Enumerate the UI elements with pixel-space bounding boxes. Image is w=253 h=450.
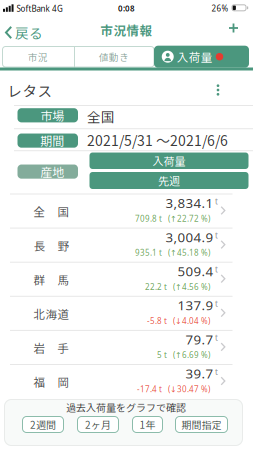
staticText: 戻る — [15, 23, 43, 42]
staticText: SoftBank — [16, 3, 49, 14]
button[interactable]: 先週 — [89, 172, 248, 189]
staticText: 全 国 — [33, 203, 69, 220]
button[interactable]: 群 馬 — [0, 262, 253, 296]
button[interactable]: 北海道 — [0, 296, 253, 330]
staticText: 1年 — [139, 417, 155, 432]
button[interactable]: 2週間 — [22, 416, 64, 433]
staticText: 137.9 — [177, 296, 213, 314]
staticText: 市況 — [28, 50, 48, 64]
button[interactable]: 長 野 — [0, 228, 253, 262]
staticText: t — [215, 264, 218, 275]
staticText: 先週 — [158, 172, 180, 188]
staticText: 5 t (↑6.69 %) — [157, 350, 210, 360]
button[interactable]: メニュー — [210, 81, 226, 99]
button[interactable]: 岩 手 — [0, 330, 253, 364]
button[interactable]: 市況 — [2, 46, 74, 67]
staticText: t — [215, 298, 218, 309]
staticText: 2ヶ月 — [85, 417, 111, 432]
staticText: 2021/5/31 ～2021/6/6 — [87, 130, 228, 150]
staticText: 935.1 t (↑45.18 %) — [135, 247, 210, 258]
staticText: 福 岡 — [33, 373, 69, 390]
staticText: 長 野 — [33, 237, 69, 254]
button[interactable]: 値動き — [74, 46, 154, 67]
staticText: 期間指定 — [181, 417, 221, 432]
staticText: 市場 — [40, 107, 64, 124]
staticText: 39.7 — [185, 364, 213, 382]
button[interactable]: 戻る — [5, 23, 43, 41]
staticText: t — [215, 332, 218, 343]
button[interactable]: 2ヶ月 — [77, 416, 119, 433]
staticText: 22.2 t (↑4.56 %) — [145, 281, 210, 292]
staticText: 0:08 — [118, 3, 135, 14]
staticText: 過去入荷量をグラフで確認 — [66, 400, 186, 414]
button[interactable]: 入荷量 — [89, 152, 248, 169]
staticText: 79.7 — [185, 330, 213, 348]
button[interactable]: 追加 — [225, 19, 242, 36]
staticText: t — [215, 230, 218, 241]
staticText: 入荷量 — [152, 153, 185, 169]
staticText: 3,004.9 — [165, 228, 213, 246]
button[interactable]: 期間指定 — [175, 416, 228, 433]
staticText: t — [215, 196, 218, 207]
staticText: レタス — [7, 80, 52, 101]
button[interactable]: 入荷量 — [154, 46, 249, 68]
staticText: 期間 — [40, 132, 64, 149]
staticText: -17.4 t (↓30.47 %) — [137, 384, 210, 394]
staticText: 市況情報 — [100, 21, 152, 39]
button[interactable]: 福 岡 — [0, 364, 253, 398]
button[interactable]: 全 国 — [0, 193, 253, 228]
staticText: 値動き — [99, 50, 129, 64]
staticText: 709.8 t (↑22.72 %) — [135, 213, 210, 224]
staticText: 26% — [211, 3, 228, 14]
staticText: t — [215, 366, 218, 377]
staticText: 全国 — [87, 106, 115, 126]
staticText: 4G — [52, 3, 63, 14]
staticText: 北海道 — [33, 305, 69, 322]
staticText: 入荷量 — [177, 48, 213, 65]
button[interactable]: 1年 — [132, 416, 163, 433]
staticText: 産地 — [40, 163, 64, 180]
staticText: 509.4 — [177, 262, 213, 280]
staticText: 3,834.1 — [165, 194, 213, 212]
staticText: 群 馬 — [33, 271, 69, 288]
staticText: -5.8 t (↓4.04 %) — [147, 316, 210, 326]
staticText: 2週間 — [30, 417, 56, 432]
staticText: 岩 手 — [33, 339, 69, 356]
